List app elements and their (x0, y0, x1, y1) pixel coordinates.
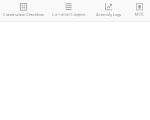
staticText: Anomaly Logs (96, 12, 121, 17)
staticText: MOC (134, 12, 144, 17)
staticText: Construction Checklists (3, 12, 44, 17)
staticText: Corrosion Coupons (51, 11, 85, 17)
button[interactable]: MOC (127, 0, 150, 22)
button[interactable]: Anomaly Logs (90, 0, 127, 22)
button[interactable]: Corrosion Coupons (47, 0, 90, 22)
button[interactable]: Construction Checklists (0, 0, 47, 22)
